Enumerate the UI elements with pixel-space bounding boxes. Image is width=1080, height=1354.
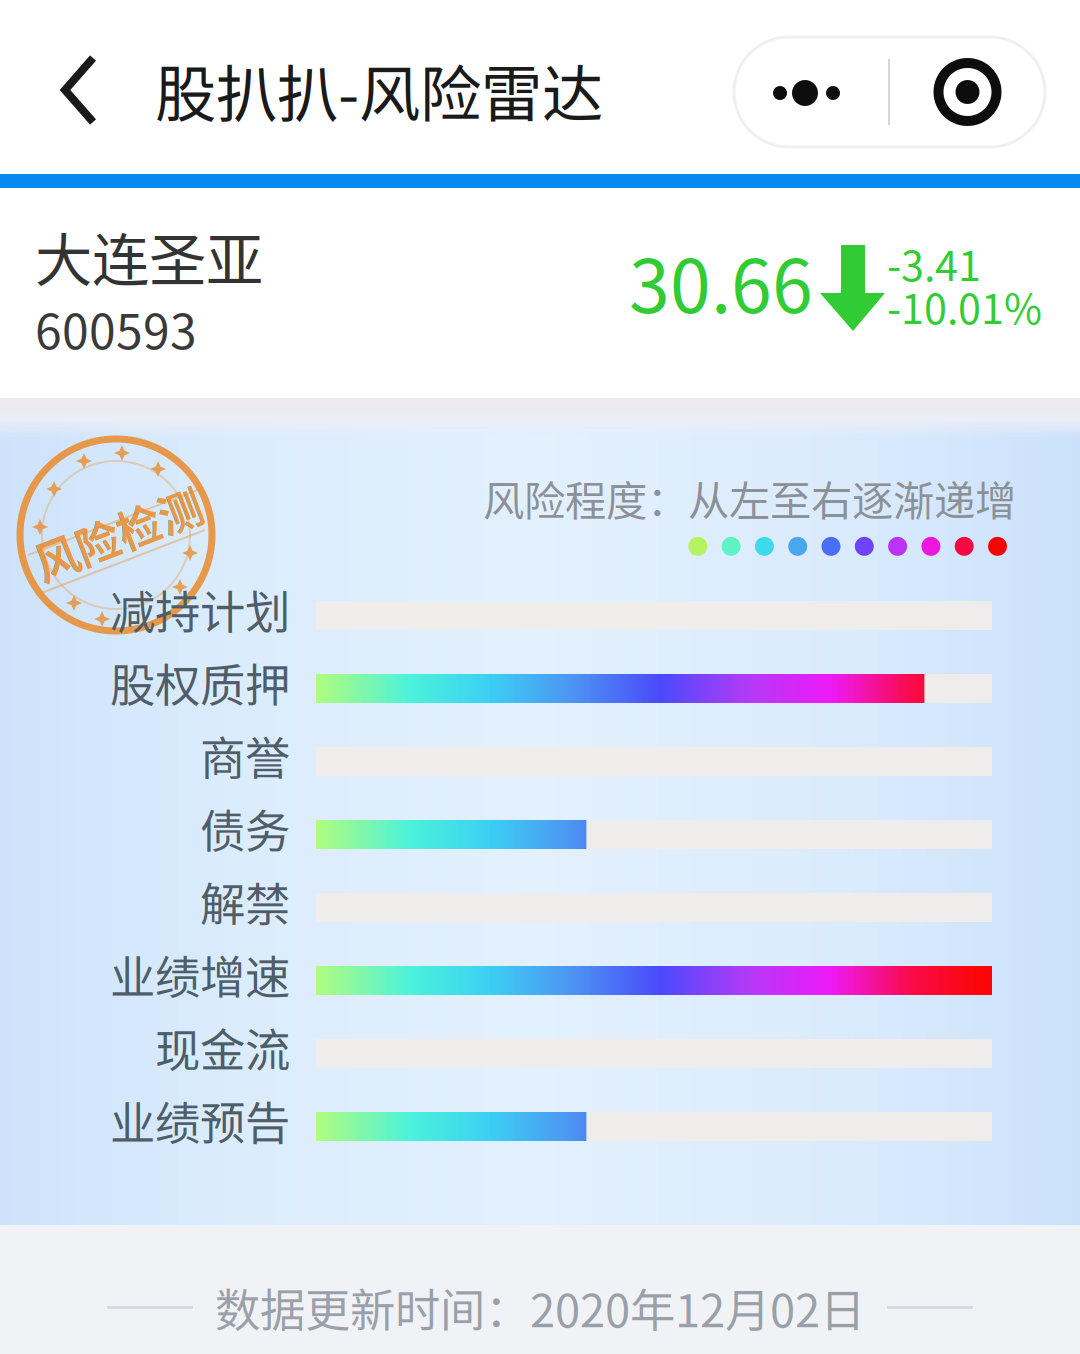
staticText: -3.41 xyxy=(887,233,981,293)
button[interactable]: Close mini program xyxy=(890,37,1045,147)
staticText: 减持计划 xyxy=(110,577,290,642)
staticText: 业绩增速 xyxy=(110,942,290,1007)
staticText: 业绩预告 xyxy=(110,1088,290,1153)
staticText: 股扒扒-风险雷达 xyxy=(155,46,603,134)
staticText: 风险检测 xyxy=(30,501,206,565)
staticText: 现金流 xyxy=(155,1015,290,1080)
staticText: 股权质押 xyxy=(110,650,290,715)
button[interactable]: Back xyxy=(49,30,145,150)
staticText: 30.66 xyxy=(629,228,813,334)
staticText: -10.01% xyxy=(887,276,1042,336)
staticText: 数据更新时间：2020年12月02日 xyxy=(215,1275,865,1340)
staticText: 风险程度：从左至右逐渐递增 xyxy=(483,468,1016,528)
staticText: 大连圣亚 xyxy=(35,214,263,297)
staticText: 600593 xyxy=(35,293,197,363)
button[interactable]: More options xyxy=(734,37,888,147)
staticText: 债务 xyxy=(200,796,290,861)
staticText: 解禁 xyxy=(200,869,290,934)
staticText: 商誉 xyxy=(200,723,290,788)
